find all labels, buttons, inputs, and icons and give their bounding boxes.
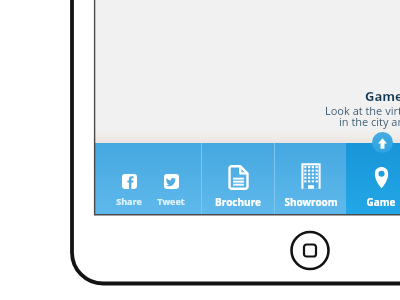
staticText: Game Zone	[365, 87, 400, 105]
button[interactable]: Brochure	[202, 143, 274, 215]
staticText: Game	[366, 195, 396, 209]
button[interactable]: Tweet	[150, 143, 192, 215]
staticText: Look at the virtual world	[325, 103, 400, 118]
button[interactable]: Game	[354, 143, 400, 215]
staticText: Share	[116, 195, 142, 207]
staticText: Brochure	[215, 195, 261, 209]
staticText: Showroom	[284, 195, 338, 209]
staticText: Tweet	[157, 195, 185, 207]
button[interactable]: Scroll to top	[372, 132, 393, 153]
button[interactable]: Showroom	[275, 143, 346, 215]
staticText: in the city and play	[339, 114, 400, 129]
button[interactable]: Share	[108, 143, 150, 215]
